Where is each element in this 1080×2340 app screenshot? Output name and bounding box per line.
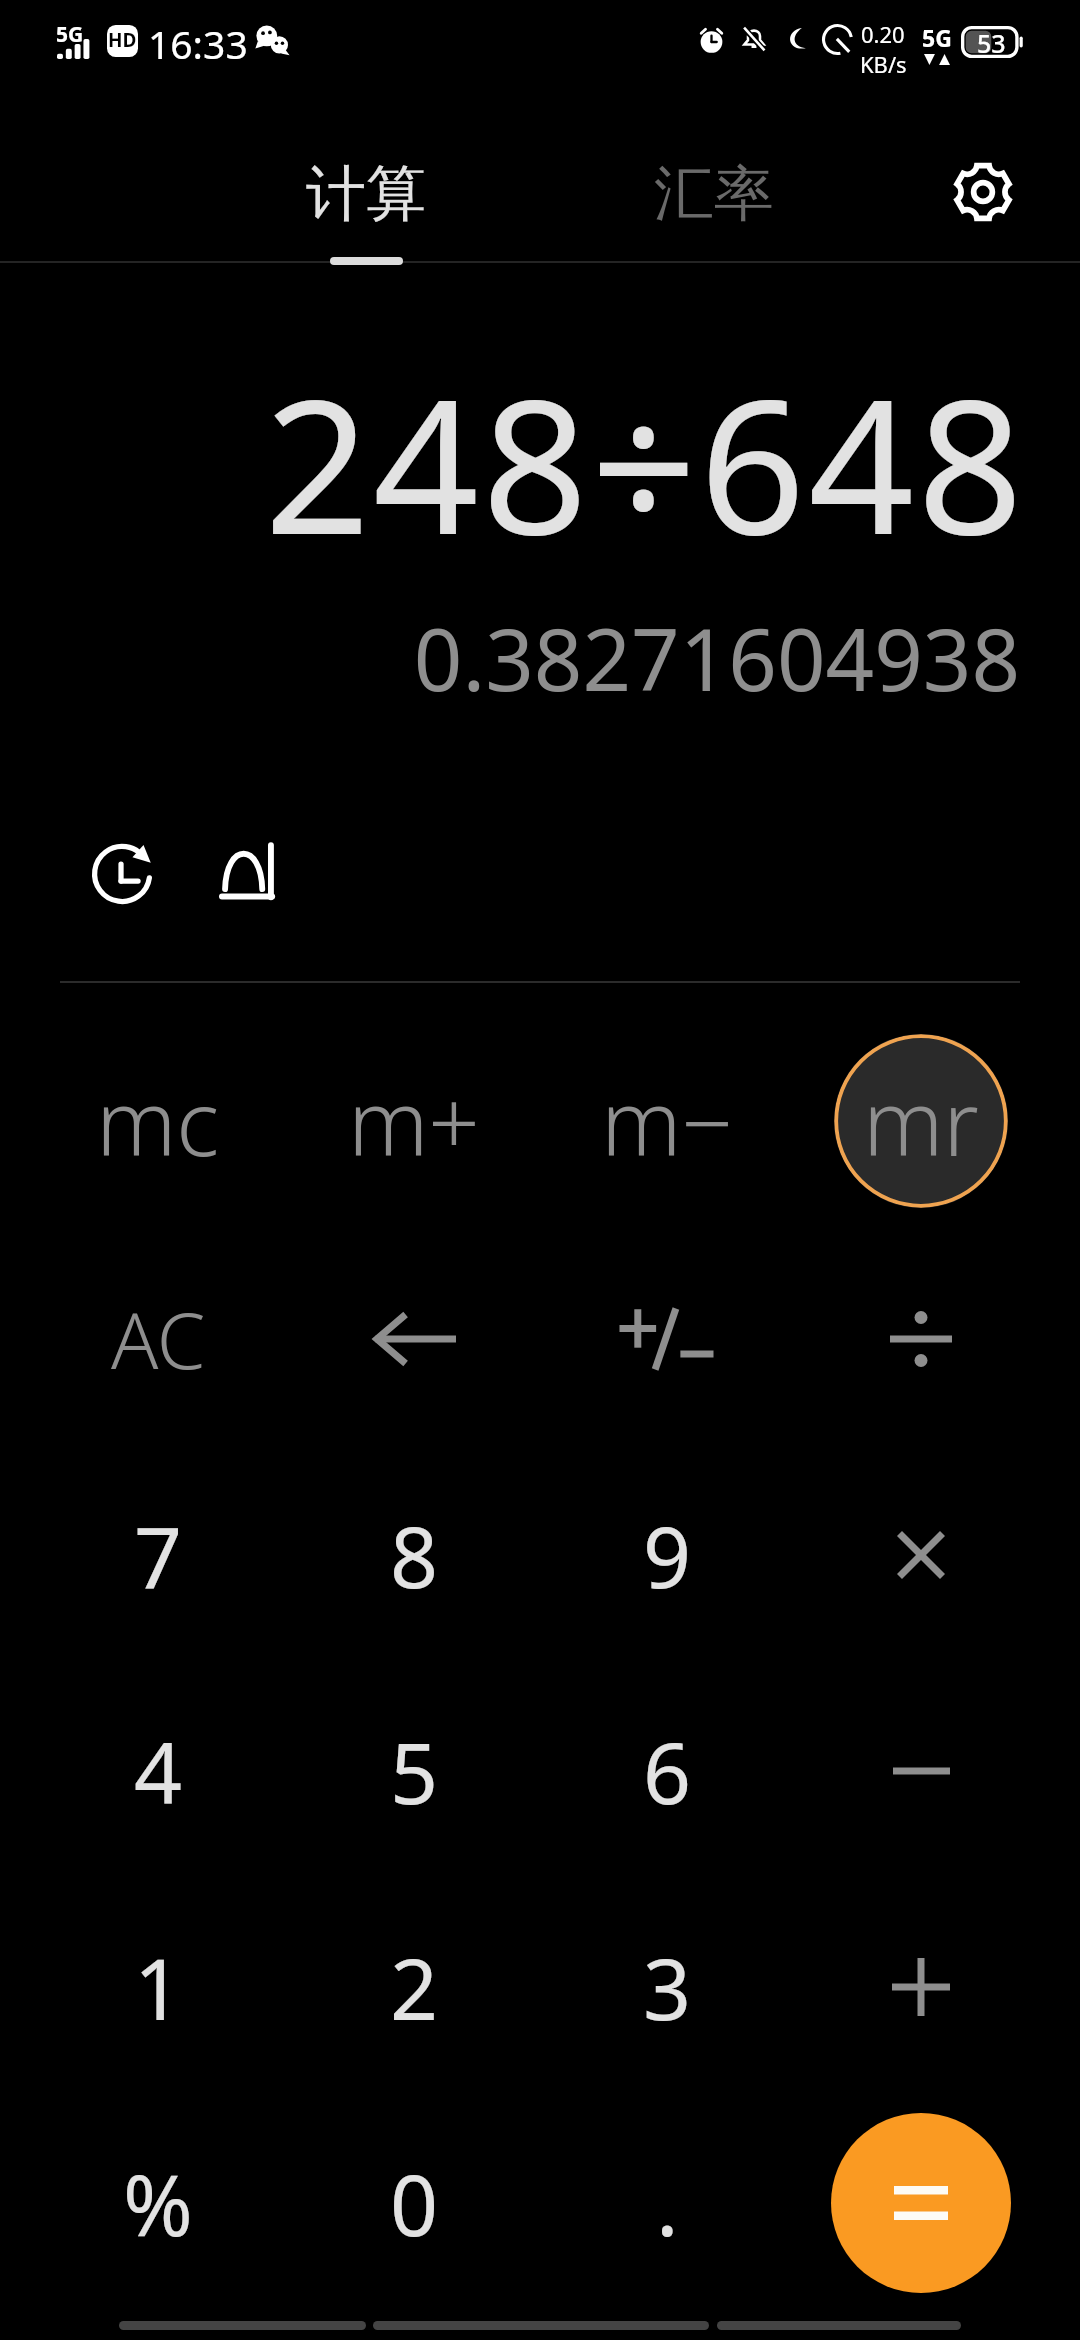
staticText: .	[656, 2146, 679, 2260]
button[interactable]: m−	[542, 1016, 792, 1226]
staticText: 1	[134, 1930, 183, 2044]
staticText: KB/s	[860, 49, 907, 79]
staticText: 0.38271604938	[413, 600, 1020, 716]
button[interactable]: 6	[542, 1666, 792, 1876]
button[interactable]: Multiply	[796, 1450, 1046, 1660]
staticText: mr	[863, 1060, 979, 1183]
staticText: 5	[390, 1714, 439, 1828]
staticText: 7	[134, 1498, 183, 1612]
button[interactable]: Plus minus	[542, 1234, 792, 1444]
staticText: 8	[390, 1498, 439, 1612]
button[interactable]: Minus	[796, 1666, 1046, 1876]
staticText: 汇率	[654, 156, 774, 232]
staticText: %	[123, 2146, 193, 2260]
staticText: 5G	[56, 20, 84, 49]
button[interactable]: 8	[289, 1450, 539, 1660]
staticText: 5G	[922, 22, 952, 53]
button[interactable]: 0	[289, 2098, 539, 2308]
button[interactable]: 7	[33, 1450, 283, 1660]
button[interactable]: 3	[542, 1882, 792, 2092]
button[interactable]: 计算	[246, 124, 486, 264]
staticText: HD	[108, 27, 137, 53]
staticText: mc	[96, 1060, 220, 1183]
staticText: AC	[111, 1286, 206, 1392]
button[interactable]: 4	[33, 1666, 283, 1876]
button[interactable]: Plus	[796, 1882, 1046, 2092]
staticText: 53	[977, 26, 1006, 58]
button[interactable]: Settings	[935, 144, 1031, 240]
staticText: m+	[348, 1060, 480, 1183]
button[interactable]: m+	[289, 1016, 539, 1226]
button[interactable]: 2	[289, 1882, 539, 2092]
staticText: 2	[390, 1930, 439, 2044]
button[interactable]: History	[79, 827, 171, 919]
staticText: 6	[643, 1714, 692, 1828]
staticText: 0.20	[861, 19, 905, 49]
button[interactable]: 5	[289, 1666, 539, 1876]
staticText: 248÷648	[264, 336, 1026, 588]
button[interactable]: %	[33, 2098, 283, 2308]
button[interactable]: mr	[834, 1034, 1008, 1208]
button[interactable]: AC	[33, 1234, 283, 1444]
staticText: 3	[643, 1930, 692, 2044]
staticText: 0	[390, 2146, 439, 2260]
staticText: 9	[643, 1498, 692, 1612]
button[interactable]: 9	[542, 1450, 792, 1660]
staticText: 16:33	[148, 17, 248, 70]
button[interactable]: 汇率	[594, 124, 834, 264]
button[interactable]: Divide	[796, 1234, 1046, 1444]
staticText: 计算	[306, 156, 426, 232]
button[interactable]: Equals	[831, 2113, 1011, 2293]
button[interactable]: mc	[33, 1016, 283, 1226]
button[interactable]: .	[542, 2098, 792, 2308]
button[interactable]: Graph	[202, 827, 294, 919]
staticText: 4	[134, 1714, 183, 1828]
staticText: m−	[601, 1060, 733, 1183]
button[interactable]: Backspace	[289, 1234, 539, 1444]
button[interactable]: 1	[33, 1882, 283, 2092]
